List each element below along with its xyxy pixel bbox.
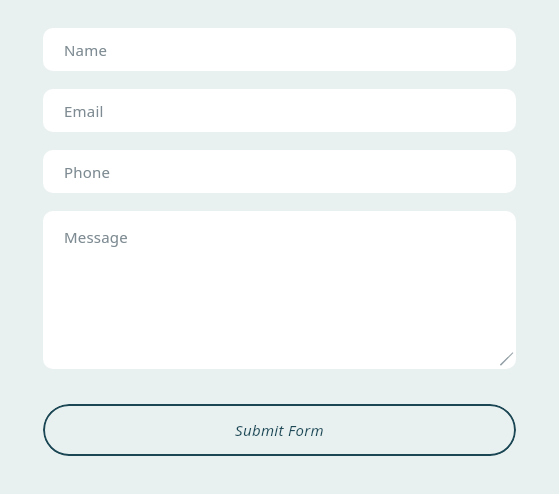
button[interactable]: Message xyxy=(43,211,516,369)
button[interactable]: Name xyxy=(43,28,516,71)
button[interactable]: Email xyxy=(43,89,516,132)
button[interactable]: Phone xyxy=(43,150,516,193)
staticText: Message xyxy=(64,227,128,247)
staticText: Email xyxy=(64,101,104,121)
staticText: Name xyxy=(64,40,108,60)
button[interactable]: Submit Form xyxy=(43,404,516,456)
staticText: Submit Form xyxy=(235,420,324,440)
staticText: Phone xyxy=(64,162,111,182)
